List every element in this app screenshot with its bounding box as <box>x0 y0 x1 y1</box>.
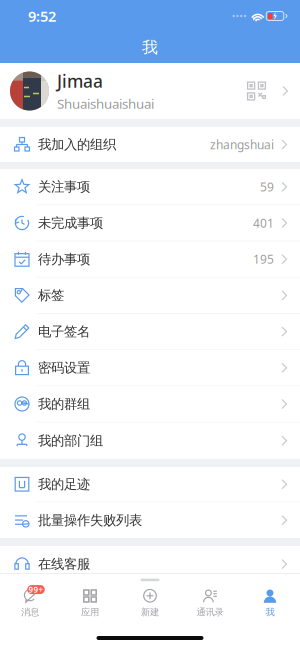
staticText: 关注事项 <box>38 179 90 195</box>
staticText: 应用 <box>81 606 99 618</box>
staticText: 59 <box>260 179 274 195</box>
staticText: 我的部门组 <box>38 432 103 449</box>
staticText: 标签 <box>38 287 64 304</box>
button[interactable]: 我的部门组 <box>0 423 300 459</box>
staticText: zhangshuai <box>210 136 274 152</box>
staticText: 195 <box>253 251 274 267</box>
button[interactable]: 电子签名 <box>0 314 300 350</box>
staticText: 未完成事项 <box>38 215 103 231</box>
staticText: 401 <box>253 215 274 231</box>
staticText: 我的足迹 <box>38 476 90 492</box>
staticText: Jimaa <box>57 70 103 93</box>
staticText: 消息 <box>21 606 39 618</box>
button[interactable]: 批量操作失败列表 <box>0 502 300 538</box>
button[interactable]: Jimaa <box>0 63 300 119</box>
staticText: 99+ <box>28 584 43 595</box>
button[interactable]: 我的足迹 <box>0 467 300 502</box>
button[interactable]: 密码设置 <box>0 350 300 386</box>
staticText: Shuaishuaishuai <box>57 95 154 112</box>
staticText: 密码设置 <box>38 360 90 376</box>
button[interactable]: 应用 <box>60 574 120 622</box>
staticText: 新建 <box>141 606 159 618</box>
button[interactable]: 我 <box>240 574 300 622</box>
staticText: 我 <box>142 38 158 57</box>
button[interactable]: 我的群组 <box>0 386 300 423</box>
button[interactable]: 关注事项 <box>0 169 300 205</box>
button[interactable]: 99+ <box>0 574 60 622</box>
staticText: 批量操作失败列表 <box>38 512 142 528</box>
button[interactable]: 待办事项 <box>0 242 300 278</box>
staticText: 在线客服 <box>38 556 90 572</box>
staticText: 我 <box>265 606 274 618</box>
staticText: 我加入的组织 <box>38 136 116 153</box>
staticText: 电子签名 <box>38 323 90 340</box>
button[interactable]: 新建 <box>120 574 180 622</box>
button[interactable]: 标签 <box>0 278 300 314</box>
staticText: 9:52 <box>28 6 56 26</box>
staticText: 我的群组 <box>38 396 90 412</box>
button[interactable]: 未完成事项 <box>0 205 300 242</box>
button[interactable]: 在线客服 <box>0 546 300 582</box>
staticText: 待办事项 <box>38 251 90 267</box>
button[interactable]: 通讯录 <box>180 574 240 622</box>
button[interactable]: 我加入的组织 <box>0 127 300 162</box>
staticText: 通讯录 <box>196 606 223 618</box>
